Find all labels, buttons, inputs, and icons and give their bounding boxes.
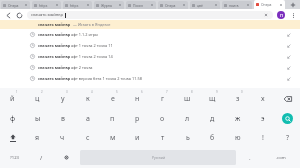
- button[interactable]: Close tab: [182, 3, 186, 7]
- staticText: афт версия бета 1 точка 2 точка 11.58: [71, 76, 142, 81]
- staticText: н: [135, 94, 140, 104]
- button[interactable]: б: [200, 128, 225, 147]
- button[interactable]: 5: [100, 89, 125, 109]
- staticText: Русский: [152, 155, 165, 160]
- button[interactable]: скачать майнкр: [0, 20, 300, 29]
- button[interactable]: Close tab: [55, 3, 59, 7]
- button[interactable]: Close tab: [279, 3, 283, 7]
- staticText: афт 1 точка 2 точка 11: [71, 43, 113, 48]
- staticText: афт 1 точка 2 точка 14: [71, 54, 113, 59]
- staticText: п: [110, 114, 115, 124]
- button[interactable]: !: [250, 128, 275, 147]
- button[interactable]: 8: [175, 89, 200, 109]
- button[interactable]: Close tab: [150, 3, 154, 7]
- button[interactable]: Журна: [94, 1, 124, 9]
- button[interactable]: я: [25, 128, 50, 147]
- button[interactable]: 2: [25, 89, 50, 109]
- button[interactable]: скачать майнкр: [0, 73, 300, 84]
- button[interactable]: 4: [75, 89, 100, 109]
- button[interactable]: Space: [80, 150, 236, 165]
- button[interactable]: скачать майнкр: [0, 29, 300, 40]
- button[interactable]: ю: [225, 128, 250, 147]
- staticText: скачать майнкр: [38, 32, 71, 37]
- button[interactable]: Clear: [263, 12, 269, 18]
- button[interactable]: Shift: [0, 128, 25, 147]
- staticText: л: [185, 114, 190, 124]
- button[interactable]: Поиск: [126, 1, 156, 9]
- staticText: .: [249, 154, 251, 162]
- button[interactable]: Backspace: [275, 89, 300, 109]
- button[interactable]: ?123: [0, 147, 29, 168]
- staticText: афт 1.1.2 игры: [71, 32, 99, 37]
- button[interactable]: ф: [0, 109, 25, 128]
- button[interactable]: скачать майнкр: [0, 40, 300, 51]
- button[interactable]: в: [50, 109, 75, 128]
- button[interactable]: Close tab: [246, 3, 250, 7]
- button[interactable]: Keyboard settings: [54, 147, 79, 168]
- staticText: ?123: [10, 155, 20, 161]
- button[interactable]: т: [150, 128, 175, 147]
- button[interactable]: Insert suggestion: [286, 54, 292, 60]
- staticText: о: [160, 114, 165, 124]
- button[interactable]: Profile: [277, 11, 285, 19]
- button[interactable]: 9: [200, 89, 225, 109]
- button[interactable]: /: [29, 147, 54, 168]
- button[interactable]: э: [250, 109, 275, 128]
- button[interactable]: .com: [262, 147, 300, 168]
- staticText: ю: [235, 133, 241, 143]
- button[interactable]: х: [250, 89, 275, 109]
- staticText: а: [86, 114, 90, 124]
- button[interactable]: Close tab: [118, 3, 122, 7]
- button[interactable]: Опера: [254, 0, 285, 9]
- button[interactable]: Close tab: [86, 3, 90, 7]
- staticText: Поиск: [133, 3, 144, 8]
- button[interactable]: д: [200, 109, 225, 128]
- staticText: я: [35, 133, 40, 143]
- button[interactable]: Insert suggestion: [286, 65, 292, 71]
- button[interactable]: Close tab: [24, 3, 28, 7]
- button[interactable]: 1: [0, 89, 25, 109]
- button[interactable]: ?: [275, 128, 300, 147]
- button[interactable]: 7: [150, 89, 175, 109]
- button[interactable]: скачать майнкр: [27, 11, 273, 19]
- button[interactable]: https: [32, 1, 61, 9]
- button[interactable]: Insert suggestion: [286, 43, 292, 49]
- staticText: е: [111, 94, 115, 104]
- button[interactable]: 0: [225, 89, 250, 109]
- button[interactable]: с: [75, 128, 100, 147]
- button[interactable]: о: [150, 109, 175, 128]
- button[interactable]: Опера: [1, 1, 30, 9]
- button[interactable]: Insert suggestion: [286, 32, 292, 38]
- button[interactable]: Menu: [289, 11, 297, 19]
- staticText: скачать майнкр: [38, 65, 71, 70]
- button[interactable]: ь: [175, 128, 200, 147]
- button[interactable]: 3: [50, 89, 75, 109]
- button[interactable]: цвё: [190, 1, 220, 9]
- button[interactable]: л: [175, 109, 200, 128]
- button[interactable]: п: [100, 109, 125, 128]
- staticText: м: [110, 133, 116, 143]
- button[interactable]: Back: [4, 11, 12, 19]
- button[interactable]: https: [63, 1, 92, 9]
- button[interactable]: ч: [50, 128, 75, 147]
- button[interactable]: и: [125, 128, 150, 147]
- button[interactable]: р: [125, 109, 150, 128]
- button[interactable]: м: [100, 128, 125, 147]
- staticText: ж: [235, 114, 241, 124]
- button[interactable]: ж: [225, 109, 250, 128]
- button[interactable]: Close tab: [214, 3, 218, 7]
- button[interactable]: New tab: [286, 0, 300, 9]
- staticText: б: [210, 133, 215, 143]
- button[interactable]: Insert suggestion: [286, 76, 292, 82]
- button[interactable]: 6: [125, 89, 150, 109]
- button[interactable]: а: [75, 109, 100, 128]
- button[interactable]: скачать майнкр: [0, 62, 300, 73]
- button[interactable]: Search: [282, 113, 293, 124]
- button[interactable]: ы: [25, 109, 50, 128]
- button[interactable]: Опера: [158, 1, 188, 9]
- button[interactable]: Reload: [15, 11, 23, 19]
- staticText: цвё: [197, 3, 203, 8]
- button[interactable]: скачать майнкр: [0, 51, 300, 62]
- button[interactable]: поиск: [222, 1, 252, 9]
